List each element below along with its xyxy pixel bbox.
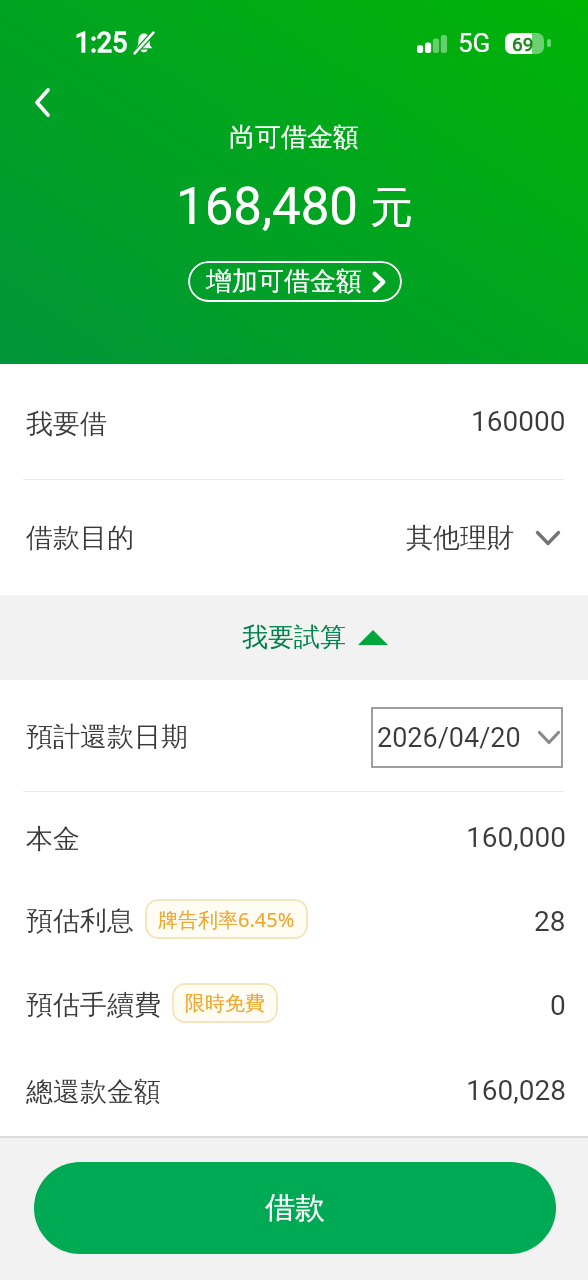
staticText: 預計還款日期 [26,720,188,754]
staticText: 168,480 [176,177,359,237]
button[interactable]: 本金 [0,795,588,879]
staticText: 總還款金額 [26,1075,161,1109]
staticText: 160000 [471,405,566,438]
staticText: 元 [370,181,413,235]
button[interactable]: 總還款金額 [0,1047,588,1133]
staticText: 尚可借金額 [229,121,359,154]
button[interactable]: 我要借 [0,364,588,479]
button[interactable]: 我要試算 [0,595,588,680]
button[interactable]: 增加可借金額 [188,261,402,302]
staticText: 借款 [265,1189,325,1227]
staticText: 2026/04/20 [377,722,521,754]
staticText: 增加可借金額 [206,265,362,298]
staticText: 我要試算 [242,621,346,654]
staticText: 69 [512,33,534,54]
button[interactable]: Back [14,74,70,130]
staticText: 160,028 [466,1074,566,1107]
staticText: 160,000 [466,821,566,854]
staticText: 預估手續費 [26,988,161,1022]
staticText: 1:25 [75,27,128,59]
staticText: 預估利息 [26,904,134,938]
button[interactable]: 2026/04/20 [371,707,563,768]
staticText: 限時免費 [185,991,265,1016]
button[interactable]: 借款 [34,1162,556,1254]
button[interactable]: 預估利息 [0,879,588,963]
staticText: 牌告利率6.45% [158,906,295,933]
staticText: 0 [550,989,566,1022]
staticText: 本金 [26,822,80,856]
button[interactable]: 借款目的 [0,480,588,595]
staticText: 5G [458,28,491,58]
staticText: 借款目的 [26,521,134,555]
staticText: 其他理財 [406,521,514,555]
button[interactable]: 預估手續費 [0,963,588,1047]
staticText: 我要借 [26,407,107,441]
staticText: 28 [534,905,566,938]
